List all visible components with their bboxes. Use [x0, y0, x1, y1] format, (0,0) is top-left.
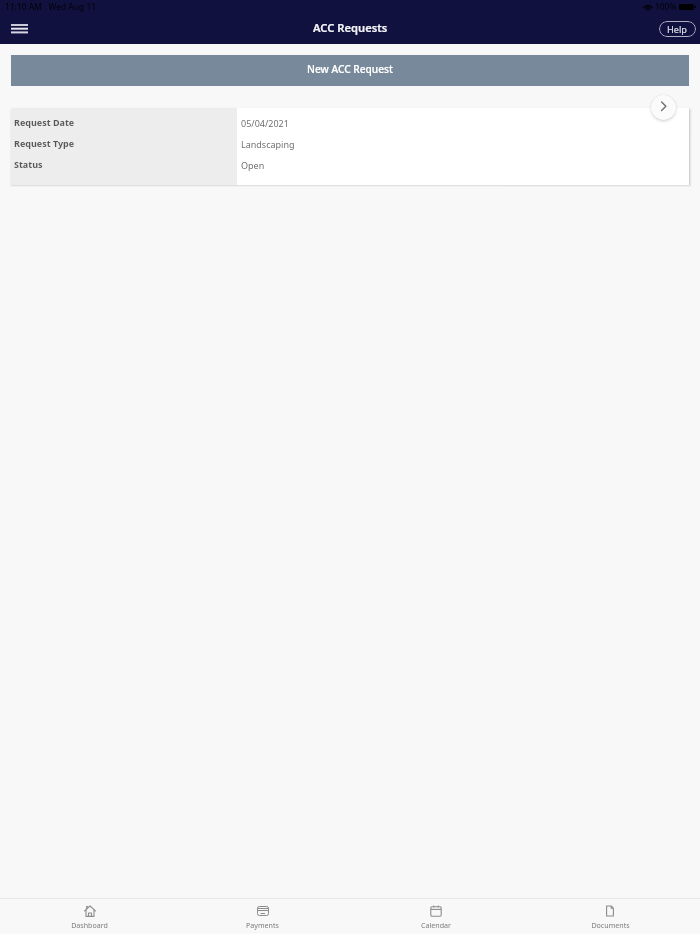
button[interactable]: Calendar [349, 899, 523, 934]
button[interactable]: Payments [176, 899, 349, 934]
button[interactable]: Dashboard [3, 899, 176, 934]
staticText: Help [667, 23, 688, 36]
staticText: 100% [655, 1, 677, 12]
staticText: Request Date [14, 116, 75, 128]
staticText: Open [241, 159, 265, 171]
staticText: Landscaping [241, 138, 295, 150]
staticText: Documents [591, 920, 630, 930]
staticText: 11:10 AM Wed Aug 11 [5, 1, 97, 12]
staticText: ACC Requests [313, 20, 388, 35]
button[interactable]: Help [659, 21, 696, 37]
button[interactable]: Menu [4, 15, 34, 43]
staticText: 05/04/2021 [241, 117, 289, 129]
button[interactable]: Open request [651, 95, 676, 120]
staticText: Request Type [14, 137, 75, 149]
staticText: Payments [246, 920, 279, 930]
staticText: New ACC Request [307, 62, 393, 76]
button[interactable]: Documents [523, 899, 697, 934]
button[interactable]: Request Date [11, 108, 689, 185]
staticText: Dashboard [71, 920, 108, 930]
staticText: Status [14, 158, 43, 170]
button[interactable]: New ACC Request [11, 55, 689, 86]
staticText: Calendar [421, 920, 451, 930]
